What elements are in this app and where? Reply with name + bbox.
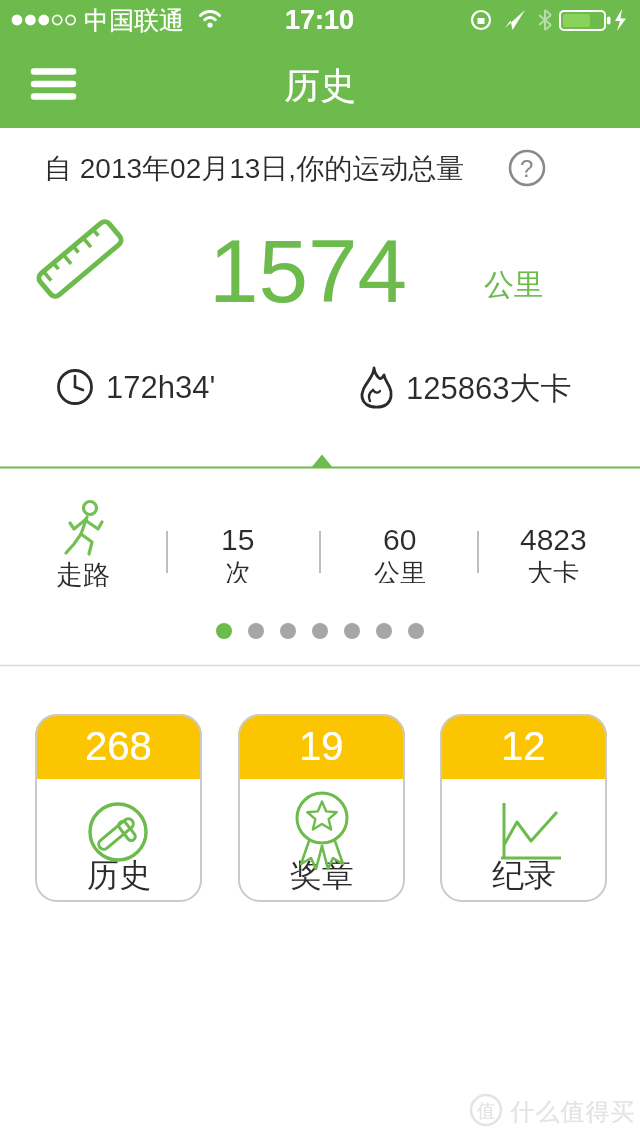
staticText: 12 xyxy=(501,724,546,769)
button[interactable]: 12 xyxy=(440,714,607,902)
staticText: 次 xyxy=(225,557,251,583)
staticText: 125863大卡 xyxy=(406,369,572,405)
button[interactable]: 268 xyxy=(35,714,202,902)
staticText: 什么值得买 xyxy=(510,1097,635,1125)
staticText: 自 2013年02月13日,你的运动总量 xyxy=(44,151,465,186)
staticText: 中国联通 xyxy=(84,5,184,36)
staticText: 19 xyxy=(299,724,344,769)
staticText: 纪录 xyxy=(492,855,556,895)
staticText: 走路 xyxy=(56,558,110,588)
staticText: 公里 xyxy=(484,266,544,300)
staticText: 4823 xyxy=(520,523,587,557)
staticText: 历史 xyxy=(284,63,356,108)
staticText: ? xyxy=(520,155,534,182)
staticText: 15 xyxy=(221,523,255,557)
button[interactable]: 19 xyxy=(238,714,405,902)
staticText: 值 xyxy=(477,1100,495,1120)
staticText: 1574 xyxy=(209,221,407,320)
staticText: 大卡 xyxy=(527,557,579,583)
staticText: 172h34' xyxy=(106,370,216,405)
staticText: 17:10 xyxy=(285,5,355,35)
staticText: 60 xyxy=(383,523,417,557)
button[interactable] xyxy=(20,56,90,114)
staticText: 268 xyxy=(85,724,152,769)
staticText: 公里 xyxy=(374,557,426,583)
staticText: 历史 xyxy=(87,855,151,895)
button[interactable] xyxy=(505,146,549,190)
staticText: 奖章 xyxy=(290,855,354,895)
